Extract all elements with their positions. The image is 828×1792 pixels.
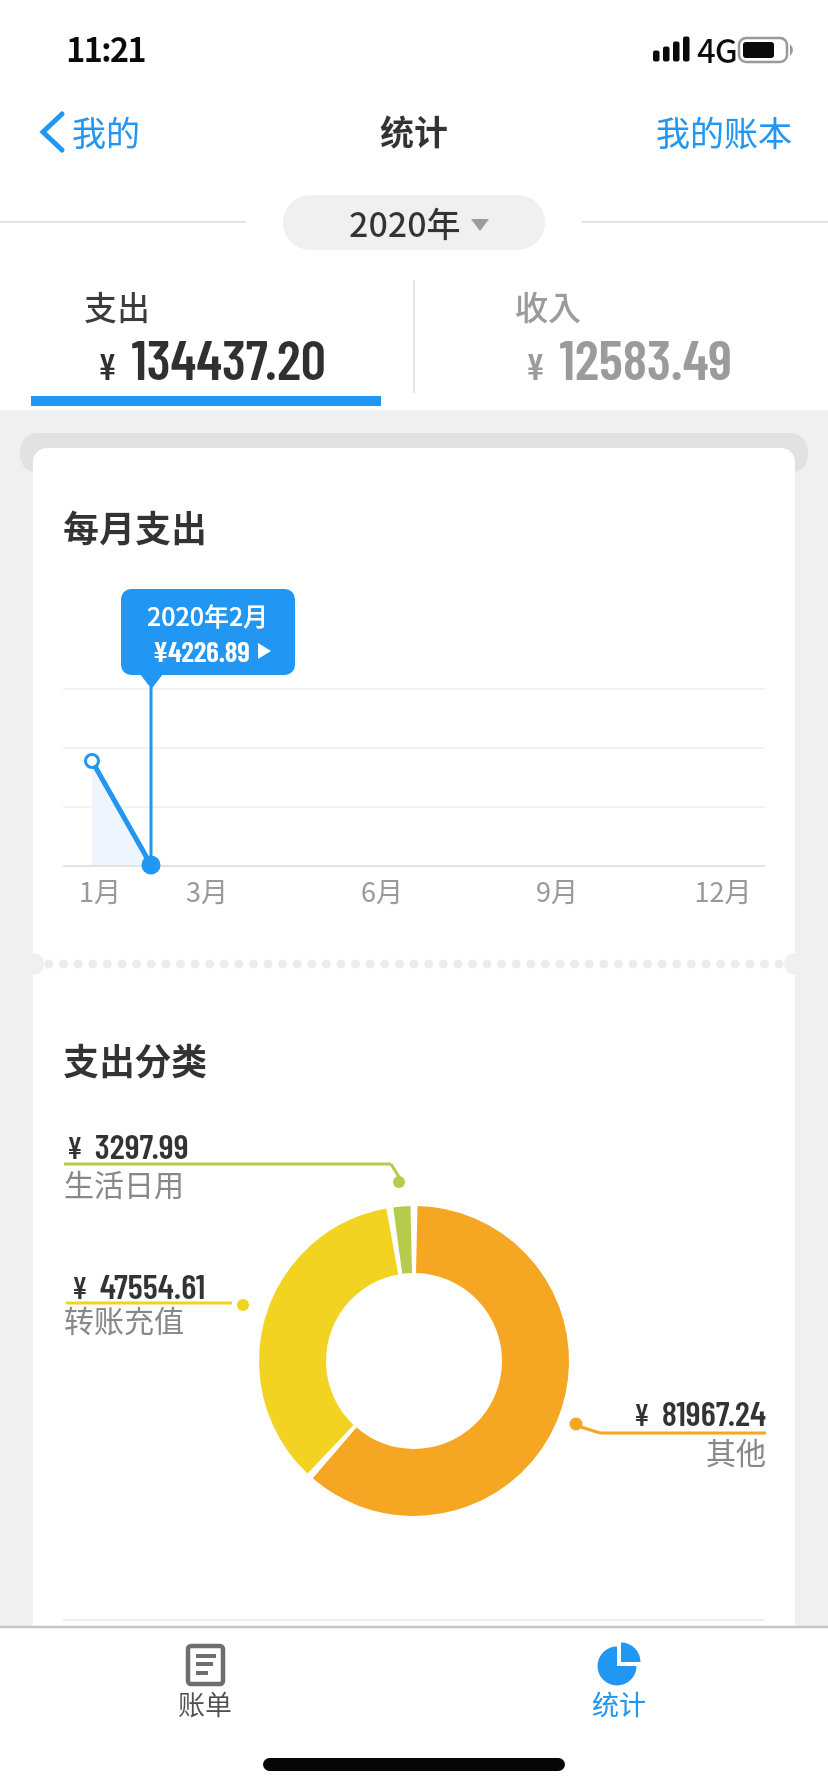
staticText: 12月 bbox=[682, 871, 764, 910]
staticText: ¥ 81967.24 bbox=[500, 1391, 766, 1433]
staticText: 1月 bbox=[68, 871, 132, 910]
staticText: 生活日用 bbox=[64, 1161, 184, 1204]
staticText: 统计 bbox=[554, 1684, 684, 1723]
button[interactable]: 账单 bbox=[140, 1635, 270, 1730]
button[interactable]: 我的账本 bbox=[648, 104, 794, 160]
button[interactable]: 我的 bbox=[36, 104, 146, 160]
button[interactable]: 2020年 bbox=[283, 195, 545, 250]
staticText: ¥4226.89 bbox=[153, 633, 250, 668]
staticText: 统计 bbox=[0, 106, 828, 155]
staticText: 6月 bbox=[350, 871, 414, 910]
staticText: 我的账本 bbox=[656, 107, 792, 156]
staticText: 转账充值 bbox=[64, 1297, 184, 1340]
staticText: 支出分类 bbox=[63, 1033, 208, 1085]
staticText: ¥ 134437.20 bbox=[98, 324, 326, 391]
staticText: ¥ 47554.61 bbox=[72, 1264, 206, 1306]
staticText: 支出 bbox=[84, 282, 150, 330]
staticText: 3月 bbox=[175, 871, 239, 910]
staticText: ¥ 3297.99 bbox=[67, 1124, 189, 1166]
staticText: 收入 bbox=[515, 282, 581, 330]
staticText: 账单 bbox=[140, 1684, 270, 1723]
button[interactable]: 统计 bbox=[554, 1635, 684, 1730]
staticText: 我的 bbox=[72, 107, 140, 156]
staticText: 每月支出 bbox=[63, 500, 208, 552]
staticText: 2020年2月 bbox=[147, 597, 269, 633]
staticText: 2020年 bbox=[349, 198, 461, 247]
staticText: ¥ 12583.49 bbox=[526, 324, 733, 391]
staticText: 9月 bbox=[525, 871, 589, 910]
staticText: 其他 bbox=[500, 1429, 766, 1472]
button[interactable]: 2020年2月 bbox=[121, 589, 295, 675]
staticText: 4G bbox=[697, 25, 737, 73]
staticText: 11:21 bbox=[66, 24, 145, 72]
button[interactable]: 收入 bbox=[414, 270, 828, 410]
button[interactable]: 支出 bbox=[0, 270, 414, 410]
